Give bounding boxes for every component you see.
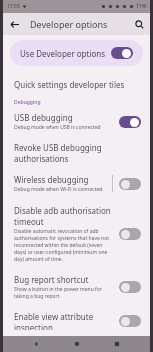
button[interactable]: Enable view attribute inspection [3, 305, 150, 336]
button[interactable]: Back [28, 336, 44, 352]
staticText: Debugging [14, 99, 41, 106]
staticText: Show a button in the power menu for taki… [14, 286, 113, 300]
staticText: Revoke USB debugging authorisations [14, 142, 141, 164]
staticText: Debug mode when USB is connected [14, 124, 101, 131]
staticText: Debug mode when Wi-Fi is connected [14, 186, 103, 193]
button[interactable]: Search [128, 13, 150, 35]
button[interactable]: Bug report shortcut [3, 269, 150, 305]
button[interactable]: Home [69, 336, 85, 352]
staticText: Quick settings developer tiles [14, 79, 125, 90]
staticText: Bug report shortcut [14, 274, 89, 285]
button[interactable]: USB debugging [3, 108, 150, 136]
button[interactable]: Wireless debugging [3, 169, 150, 198]
button[interactable]: Disable adb authorisation timeout [3, 198, 150, 269]
button[interactable]: Back [3, 13, 25, 35]
staticText: 11:55 [7, 3, 20, 10]
staticText: Disable adb authorisation timeout [14, 205, 113, 227]
button[interactable]: Recents [109, 336, 125, 352]
staticText: 71% [136, 3, 146, 10]
staticText: Use Developer options [20, 48, 106, 59]
button[interactable]: Use Developer options [10, 40, 143, 66]
staticText: Developer options [30, 18, 108, 30]
staticText: Wireless debugging [14, 174, 89, 185]
staticText: Disable automatic revocation of adb auth… [14, 228, 113, 263]
button[interactable]: Quick settings developer tiles [3, 75, 150, 96]
staticText: Enable view attribute inspection [14, 311, 113, 330]
button[interactable]: Revoke USB debugging authorisations [3, 136, 150, 169]
staticText: USB debugging [14, 112, 73, 123]
